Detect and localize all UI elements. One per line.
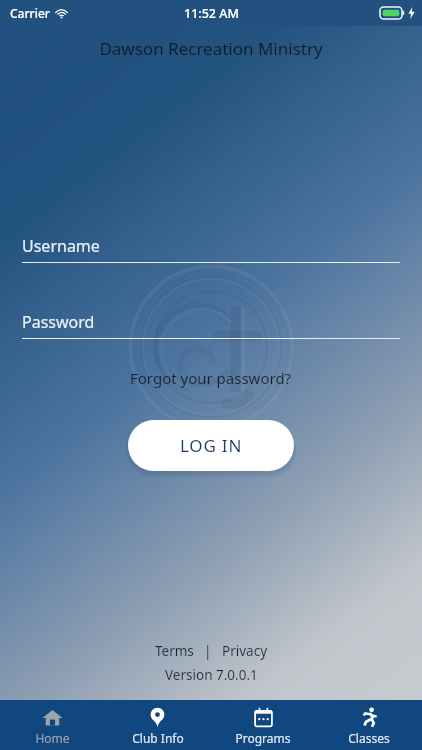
staticText: Dawson Recreation Ministry <box>99 37 323 60</box>
staticText: Terms <box>155 642 194 660</box>
button[interactable]: Classes <box>316 700 422 750</box>
staticText: Carrier <box>10 5 50 21</box>
staticText: | <box>197 642 219 660</box>
button[interactable]: Club Info <box>105 700 210 750</box>
staticText: Version 7.0.0.1 <box>165 666 258 684</box>
button[interactable]: Forgot your password? <box>124 365 298 391</box>
staticText: Password <box>22 311 95 333</box>
staticText: Privacy <box>222 642 268 660</box>
staticText: Home <box>35 730 70 746</box>
button[interactable]: Home <box>0 700 105 750</box>
button[interactable]: Privacy <box>219 642 271 660</box>
button[interactable]: LOG IN <box>128 420 294 471</box>
button[interactable]: Terms <box>152 642 197 660</box>
button[interactable]: Programs <box>210 700 316 750</box>
staticText: LOG IN <box>180 434 243 457</box>
button[interactable]: Password <box>22 311 400 339</box>
staticText: Forgot your password? <box>130 368 292 388</box>
button[interactable]: Username <box>22 235 400 263</box>
staticText: Classes <box>348 730 390 746</box>
staticText: Username <box>22 235 100 257</box>
staticText: 11:52 AM <box>184 5 239 22</box>
staticText: Programs <box>235 730 291 746</box>
staticText: Club Info <box>132 730 184 746</box>
